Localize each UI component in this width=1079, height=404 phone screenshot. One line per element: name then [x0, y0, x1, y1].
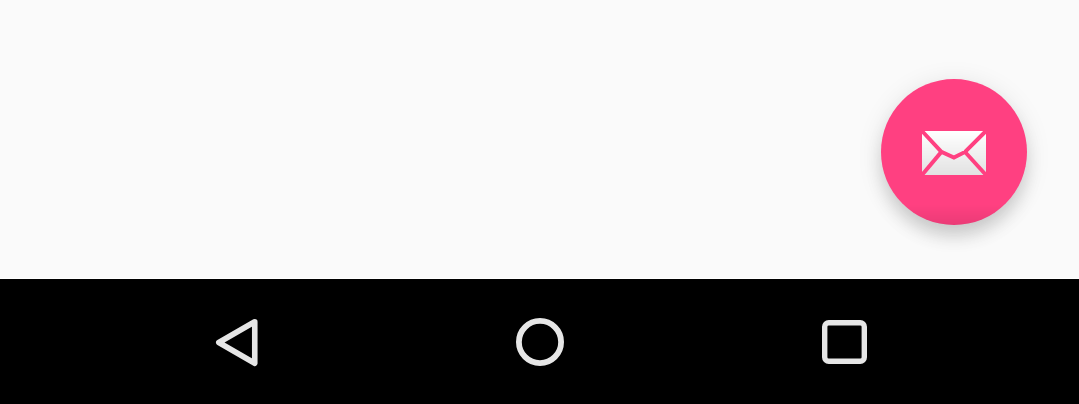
button[interactable]: Compose email [881, 79, 1027, 225]
button[interactable]: Back [176, 302, 296, 382]
button[interactable]: Home [480, 302, 600, 382]
button[interactable]: Recent apps [784, 302, 904, 382]
